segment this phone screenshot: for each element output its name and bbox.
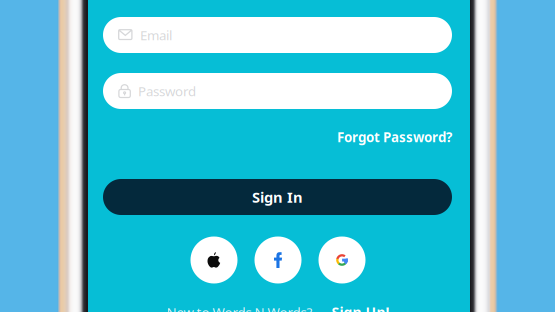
button[interactable]: Sign in with Google xyxy=(318,236,365,283)
staticText: Password xyxy=(138,82,196,100)
button[interactable]: Sign in with Apple xyxy=(190,236,237,283)
button[interactable]: Password xyxy=(103,73,452,109)
button[interactable]: Forgot Password? xyxy=(103,127,452,147)
staticText: Email xyxy=(140,26,172,44)
staticText: Sign Up! xyxy=(331,302,389,312)
button[interactable]: Email xyxy=(103,17,452,53)
button[interactable]: New to Words N Words? xyxy=(166,302,389,312)
staticText: Sign In xyxy=(252,187,303,207)
staticText: New to Words N Words? xyxy=(166,303,312,312)
button[interactable]: Sign In xyxy=(103,179,452,215)
button[interactable]: Sign in with Facebook xyxy=(254,236,301,283)
staticText: Forgot Password? xyxy=(337,128,452,146)
